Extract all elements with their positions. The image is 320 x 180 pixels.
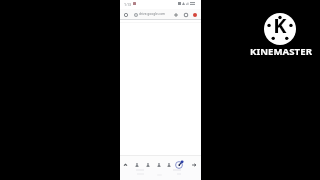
staticText: 1:13: [124, 2, 132, 7]
button[interactable]: Reload: [121, 10, 130, 19]
button[interactable]: Keyboard tool 4: [164, 160, 173, 169]
button[interactable]: Keyboard tool 3: [154, 160, 163, 169]
button[interactable]: Samsung keyboard settings: [173, 159, 184, 170]
button[interactable]: Account: [190, 10, 199, 19]
staticText: KINEMASTER: [246, 45, 316, 58]
button[interactable]: New tab: [171, 10, 180, 19]
button[interactable]: drive.google.com: [139, 12, 166, 16]
button[interactable]: Tabs: [181, 10, 190, 19]
button[interactable]: Keyboard tool 2: [143, 160, 152, 169]
button[interactable]: Keyboard tool 1: [132, 160, 141, 169]
button[interactable]: Expand toolbar: [121, 160, 130, 169]
staticText: K: [264, 12, 296, 39]
button[interactable]: More: [189, 160, 198, 169]
